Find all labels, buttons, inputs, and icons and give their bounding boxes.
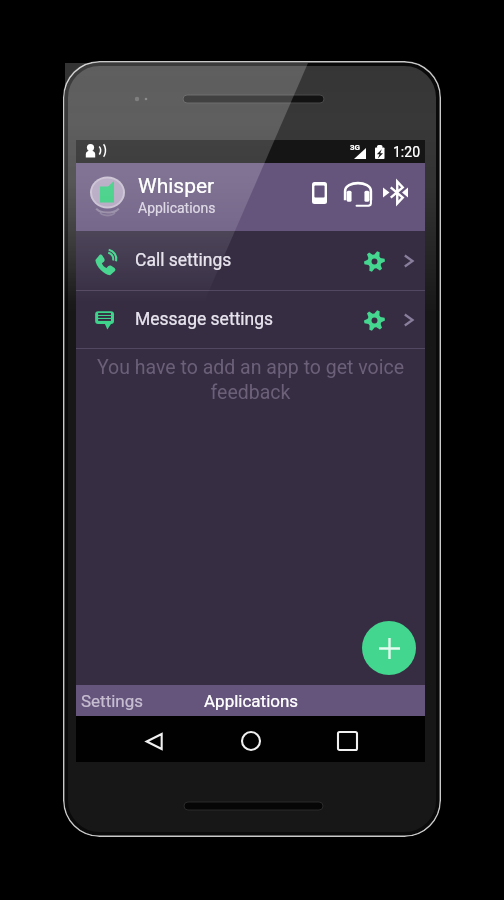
button[interactable]: Add application	[362, 621, 416, 675]
staticText: Message settings	[135, 309, 274, 330]
staticText: Settings	[81, 691, 144, 711]
button[interactable]: Settings	[76, 685, 200, 716]
button[interactable]: Call settings	[76, 231, 425, 290]
button[interactable]: Message settings	[76, 291, 425, 348]
staticText: 3G	[350, 143, 361, 152]
button[interactable]: Phone speaker audio output	[301, 174, 338, 211]
staticText: 1:20	[393, 144, 420, 160]
staticText: Whisper	[138, 174, 215, 199]
button[interactable]: Home	[229, 719, 273, 763]
button[interactable]: Message settings options	[357, 303, 391, 337]
button[interactable]: Back	[132, 719, 176, 763]
staticText: Call settings	[135, 250, 232, 271]
button[interactable]: Headset audio output	[339, 174, 376, 211]
button[interactable]: Bluetooth audio output	[377, 174, 414, 211]
staticText: You have to add an app to get voice feed…	[92, 356, 409, 404]
button[interactable]: Call settings options	[357, 244, 391, 278]
staticText: Applications	[138, 200, 216, 216]
staticText: Applications	[204, 691, 299, 711]
button[interactable]: Applications	[200, 685, 425, 716]
button[interactable]: Recent apps	[325, 719, 369, 763]
